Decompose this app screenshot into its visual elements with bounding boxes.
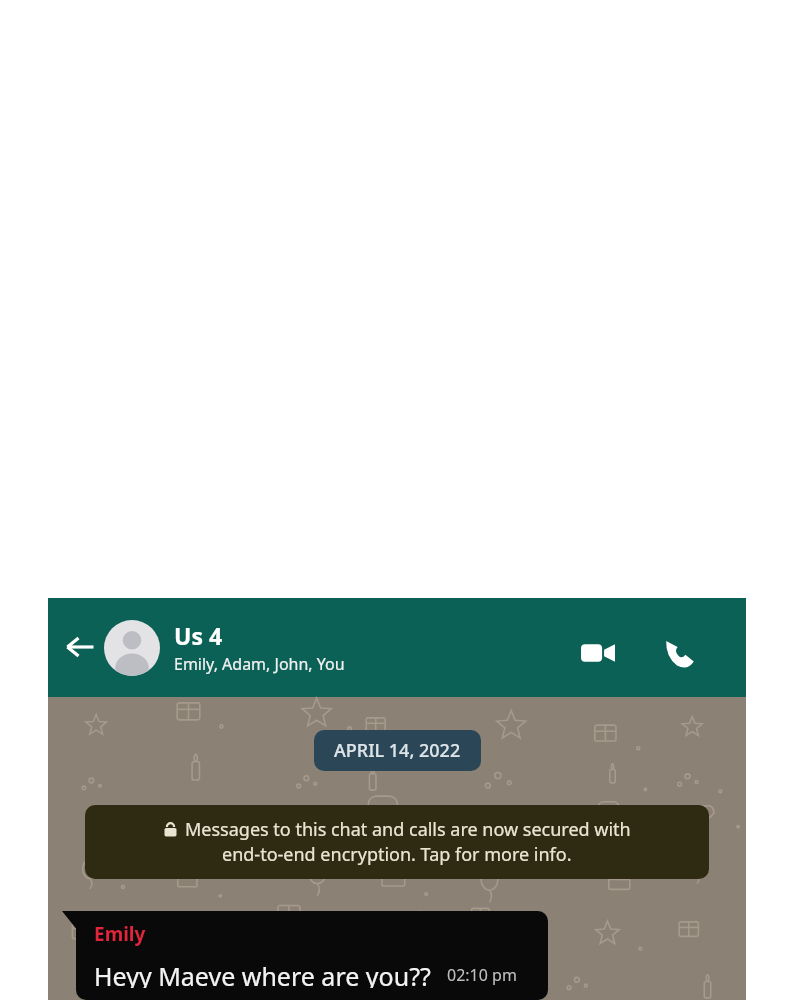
staticText: APRIL 14, 2022 — [334, 738, 461, 763]
button[interactable]: More options — [732, 625, 784, 677]
button[interactable]: Emily — [76, 911, 548, 1000]
staticText: Heyy Maeve where are you?? — [94, 959, 431, 988]
button[interactable]: APRIL 14, 2022 — [314, 730, 481, 771]
button[interactable]: Us 4 — [104, 598, 434, 697]
staticText: Us 4 — [174, 620, 223, 651]
staticText: Messages to this chat and calls are now … — [185, 817, 631, 842]
staticText: 02:10 pm — [447, 964, 517, 986]
button[interactable]: Video call — [570, 625, 626, 681]
staticText: end-to-end encryption. Tap for more info… — [222, 842, 572, 867]
button[interactable]: Messages to this chat and calls are now … — [85, 805, 709, 879]
button[interactable]: Call — [652, 625, 708, 681]
button[interactable]: Back — [56, 623, 104, 671]
staticText: Emily — [94, 921, 146, 947]
staticText: Emily, Adam, John, You — [174, 653, 345, 675]
